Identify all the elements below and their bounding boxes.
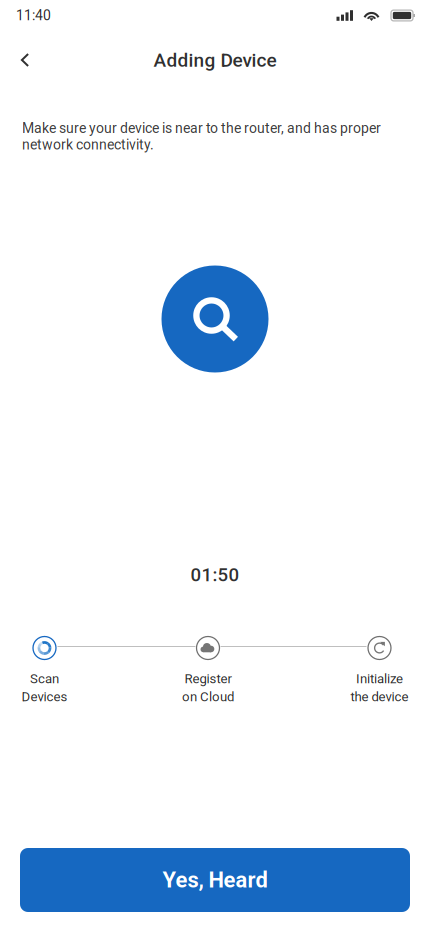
staticText: 01:50: [190, 564, 239, 586]
staticText: the device: [350, 689, 408, 704]
staticText: Register: [184, 671, 231, 686]
staticText: Initialize: [356, 671, 403, 686]
staticText: Yes, Heard: [162, 867, 267, 893]
staticText: 11:40: [16, 7, 51, 24]
staticText: Adding Device: [153, 49, 276, 71]
staticText: on Cloud: [182, 689, 234, 704]
staticText: Make sure your device is near to the rou…: [22, 120, 381, 153]
staticText: Devices: [21, 689, 67, 704]
button[interactable]: Yes, Heard: [20, 848, 410, 912]
staticText: Scan: [30, 671, 59, 686]
button[interactable]: Back: [8, 40, 42, 80]
